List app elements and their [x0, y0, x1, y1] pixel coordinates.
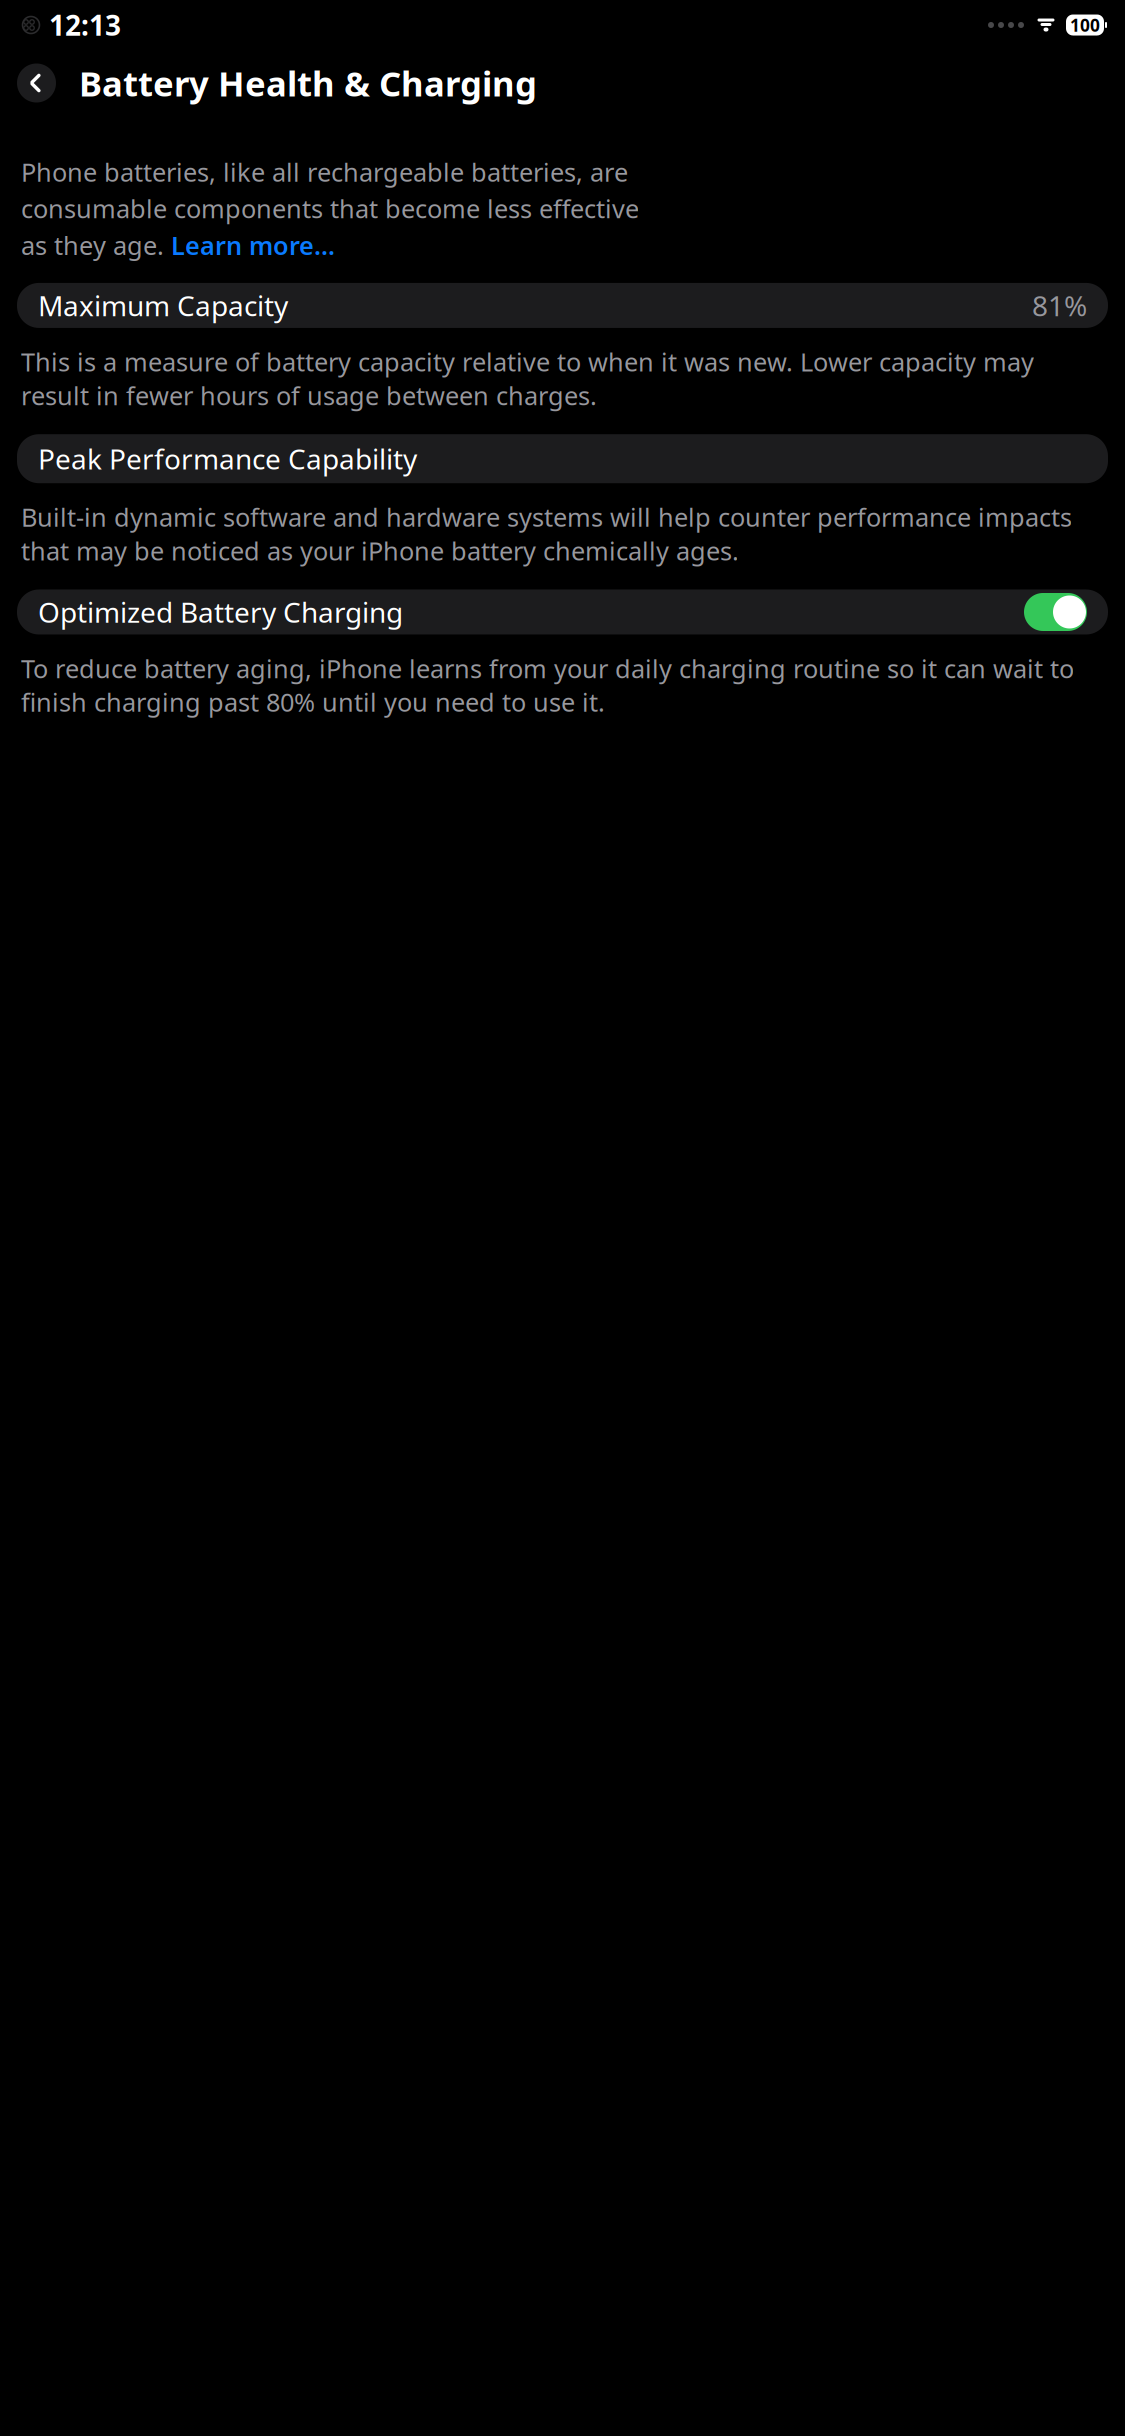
button[interactable]: Optimized Battery Charging [17, 589, 1108, 634]
staticText: Peak Performance Capability [38, 440, 417, 477]
staticText: consumable components that become less e… [21, 192, 639, 225]
staticText: as they age. [21, 228, 171, 262]
button[interactable]: Maximum Capacity [17, 283, 1108, 328]
button[interactable]: Peak Performance Capability [17, 434, 1108, 483]
button[interactable]: Back [17, 63, 56, 102]
staticText: Learn more... [171, 228, 335, 262]
staticText: 81% [1032, 287, 1087, 324]
staticText: 100 [1070, 13, 1100, 36]
staticText: Battery Health & Charging [79, 60, 537, 106]
staticText: To reduce battery aging, iPhone learns f… [21, 651, 1074, 719]
staticText: Built-in dynamic software and hardware s… [21, 500, 1072, 567]
staticText: Optimized Battery Charging [38, 593, 403, 631]
button[interactable]: Learn more... [171, 228, 335, 262]
staticText: 12:13 [49, 6, 121, 44]
staticText: Phone batteries, like all rechargeable b… [21, 155, 628, 189]
staticText: This is a measure of battery capacity re… [21, 345, 1034, 412]
staticText: Maximum Capacity [38, 287, 288, 324]
